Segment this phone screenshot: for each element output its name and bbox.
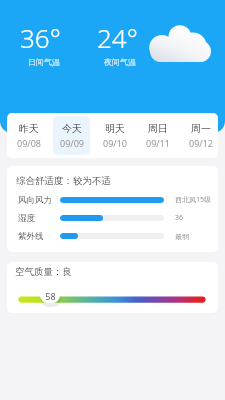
staticText: 36: [175, 213, 184, 223]
staticText: 今天: [62, 122, 82, 135]
staticText: 夜间气温: [104, 57, 136, 67]
staticText: 09/09: [60, 137, 84, 149]
staticText: 09/12: [189, 137, 213, 149]
staticText: 昨天: [19, 122, 39, 135]
staticText: 09/08: [17, 137, 41, 149]
staticText: 紫外线: [18, 231, 44, 242]
staticText: 周日: [148, 122, 168, 135]
staticText: 58: [45, 290, 56, 302]
other: Cloudy weather: [150, 24, 211, 62]
staticText: 空气质量：良: [15, 266, 72, 278]
button[interactable]: 昨天: [7, 113, 50, 158]
button[interactable]: 明天: [93, 113, 136, 158]
staticText: 周一: [191, 122, 211, 135]
staticText: 综合舒适度：较为不适: [16, 175, 111, 187]
staticText: 风向风力: [18, 195, 52, 206]
staticText: 36°: [20, 20, 61, 55]
button[interactable]: 今天: [50, 113, 93, 158]
button[interactable]: 周一: [179, 113, 222, 158]
staticText: 西北风15级: [175, 195, 212, 205]
staticText: 日间气温: [28, 57, 60, 67]
staticText: 09/10: [103, 137, 127, 149]
staticText: 明天: [105, 122, 125, 135]
button[interactable]: 周日: [136, 113, 179, 158]
staticText: 湿度: [18, 213, 35, 224]
staticText: 最弱: [175, 232, 189, 241]
staticText: 24°: [97, 20, 138, 55]
staticText: 09/11: [146, 137, 170, 149]
